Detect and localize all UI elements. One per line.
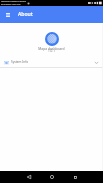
staticText: Telematic/Network Service [1, 0, 26, 3]
button[interactable]: System Info [0, 57, 103, 67]
staticText: Mapa dashboard [38, 46, 65, 50]
button[interactable]: Home [46, 171, 58, 183]
button[interactable]: Open navigation menu [0, 7, 16, 23]
staticText: 1.0.1 [48, 49, 55, 53]
button[interactable]: Back [23, 171, 35, 183]
staticText: About [18, 11, 33, 18]
button[interactable]: Recent apps [69, 171, 81, 183]
staticText: Emergency calls only [1, 3, 21, 6]
staticText: System Info [11, 60, 29, 64]
